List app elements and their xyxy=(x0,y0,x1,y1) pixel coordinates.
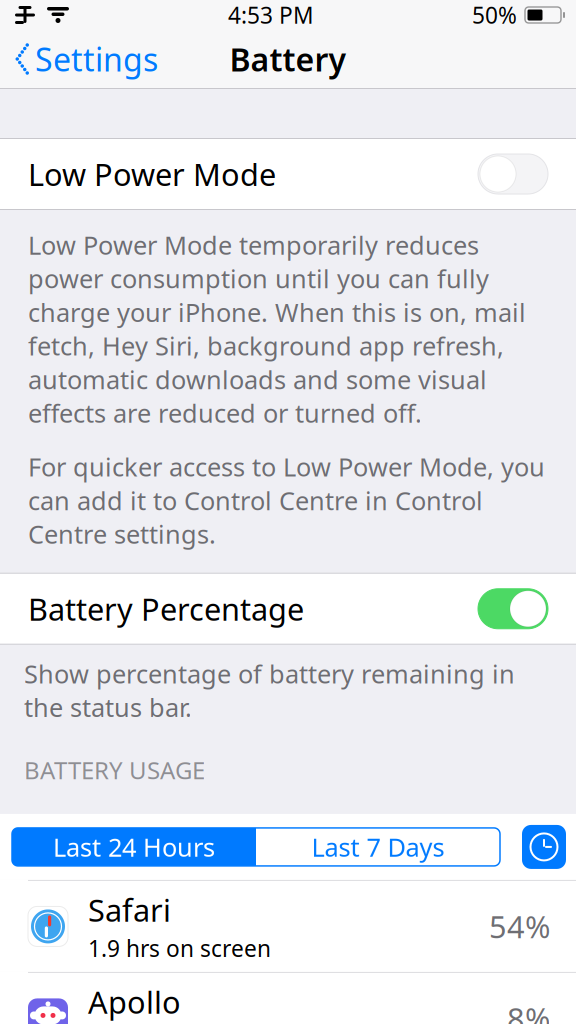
staticText: Settings xyxy=(35,38,158,80)
staticText: Last 7 Days xyxy=(311,830,444,864)
button[interactable]: Last 7 Days xyxy=(256,828,500,866)
button[interactable]: Apollo xyxy=(0,972,576,1024)
staticText: Apollo xyxy=(88,981,181,1022)
staticText: Battery Percentage xyxy=(28,588,304,629)
button[interactable]: Low Power Mode xyxy=(0,139,576,209)
button[interactable]: Battery Percentage xyxy=(0,574,576,644)
button[interactable]: Safari xyxy=(0,880,576,972)
button[interactable]: Last 24 Hours xyxy=(12,828,256,866)
staticText: For quicker access to Low Power Mode, yo… xyxy=(28,450,545,551)
staticText: 4:53 PM xyxy=(228,0,314,30)
staticText: 54% xyxy=(489,906,550,947)
staticText: 50% xyxy=(472,0,517,30)
staticText: 8% xyxy=(507,998,550,1024)
button[interactable]: Settings xyxy=(0,30,158,88)
staticText: Safari xyxy=(88,889,171,930)
staticText: Low Power Mode xyxy=(28,154,276,194)
staticText: Battery xyxy=(229,38,346,80)
staticText: Last 24 Hours xyxy=(53,830,215,864)
button[interactable]: Show battery usage over time xyxy=(522,825,566,869)
staticText: BATTERY USAGE xyxy=(24,754,205,786)
staticText: 1.9 hrs on screen xyxy=(88,933,271,963)
staticText: Low Power Mode temporarily reduces power… xyxy=(28,228,526,430)
staticText: Show percentage of battery remaining in … xyxy=(24,657,515,724)
